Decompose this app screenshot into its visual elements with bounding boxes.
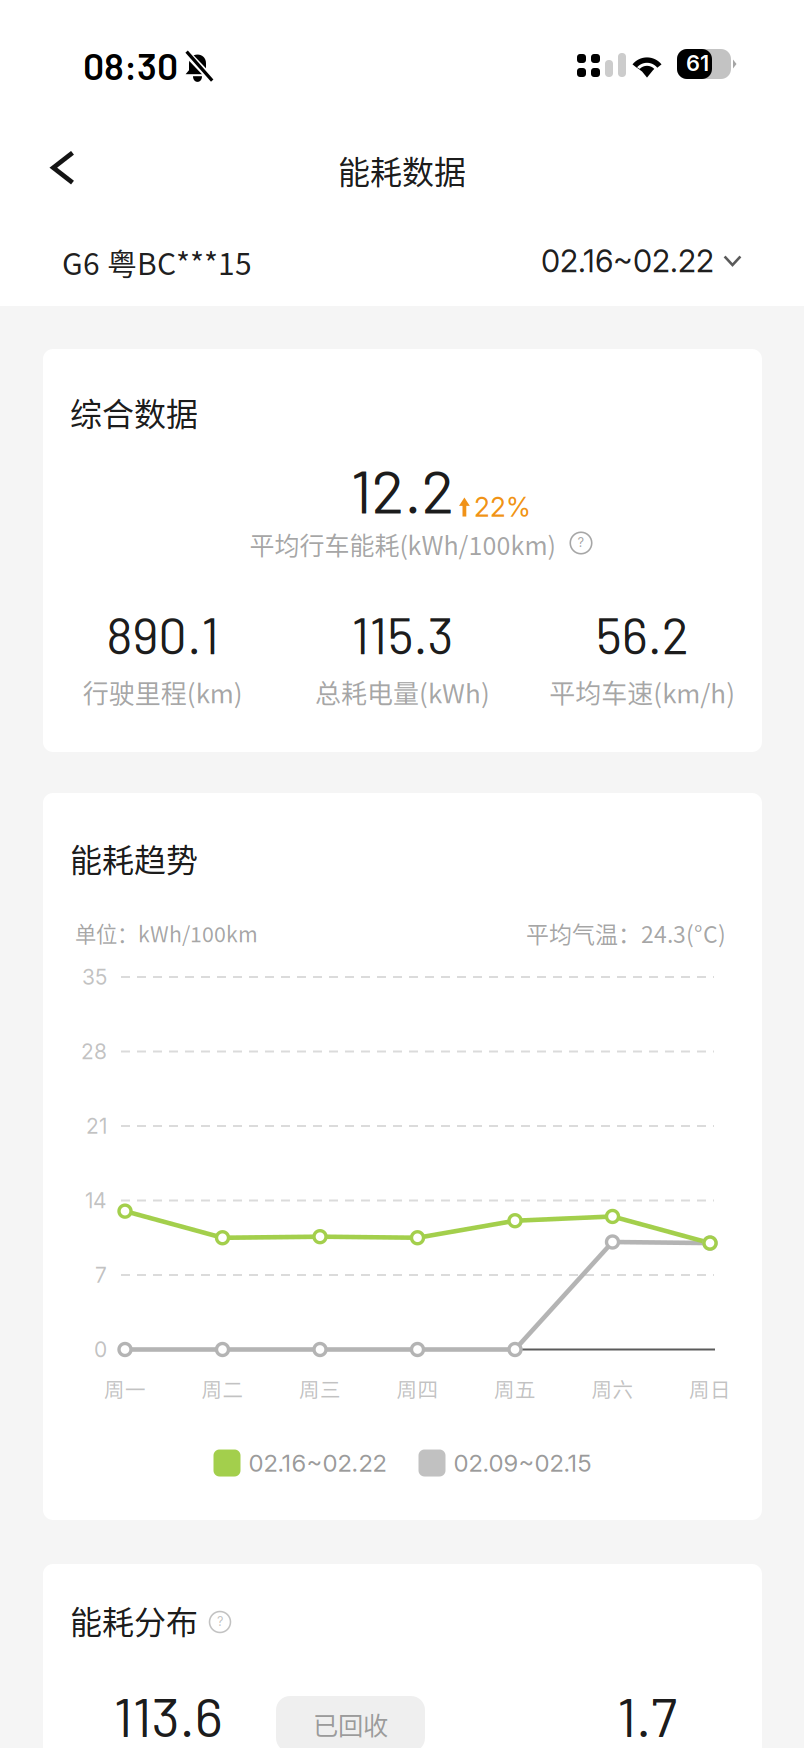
staticText: 能耗趋势 [70,835,198,881]
staticText: 能耗数据 [338,147,466,193]
staticText: 28 [81,1039,107,1064]
staticText: 02.16~02.22 [541,242,714,279]
staticText: 12.2 [350,452,454,526]
staticText: 周日 [689,1374,731,1403]
staticText: 113.6 [113,1682,222,1748]
staticText: 14 [85,1188,107,1213]
staticText: 02.09~02.15 [453,1448,591,1477]
staticText: 7 [95,1262,107,1288]
staticText: 行驶里程(km) [83,673,243,711]
staticText: 22% [474,491,531,523]
staticText: 02.16~02.22 [248,1448,386,1477]
button[interactable]: Back [0,0,88,84]
staticText: 总耗电量(kWh) [315,673,490,711]
staticText: 0 [94,1337,107,1362]
staticText: ? [577,534,584,550]
staticText: 890.1 [106,604,219,664]
staticText: 周一 [104,1374,146,1403]
staticText: 周五 [494,1374,536,1403]
staticText: 21 [86,1113,107,1139]
staticText: G6 粤BC***15 [62,240,252,284]
staticText: ? [217,1614,223,1629]
staticText: 周三 [299,1374,341,1403]
staticText: 115.3 [351,604,453,664]
staticText: 35 [82,964,107,990]
staticText: 61 [686,50,709,76]
staticText: 周六 [591,1374,633,1403]
staticText: 56.2 [596,604,689,664]
staticText: 平均气温：24.3(°C) [526,916,726,950]
staticText: 1.7 [617,1682,677,1748]
staticText: 08:30 [83,43,178,87]
staticText: 周四 [396,1374,438,1403]
staticText: 已回收 [313,1706,388,1742]
staticText: 平均行车能耗(kWh/100km) [249,526,555,562]
staticText: 综合数据 [70,389,198,435]
staticText: 平均车速(km/h) [549,673,735,711]
staticText: 单位：kWh/100km [75,918,258,948]
staticText: 周二 [201,1374,243,1403]
staticText: 能耗分布 [70,1597,198,1643]
